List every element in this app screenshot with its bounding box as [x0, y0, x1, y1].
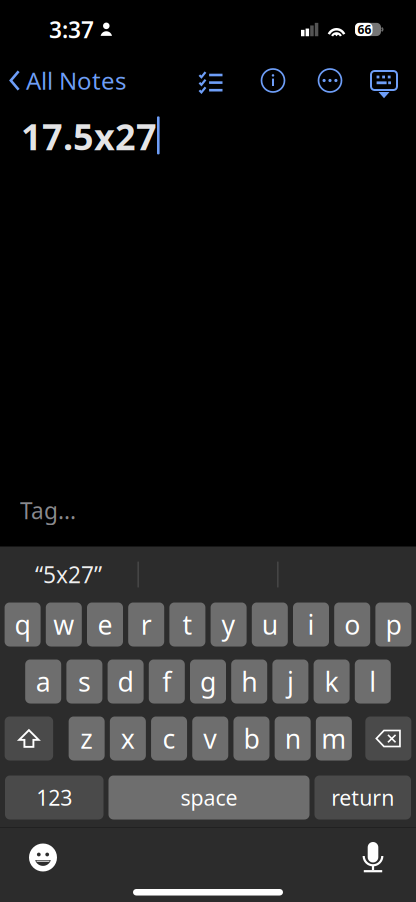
button[interactable]: s: [66, 659, 102, 703]
staticText: Tag...: [20, 495, 76, 525]
staticText: j: [287, 664, 294, 699]
button[interactable]: k: [314, 659, 350, 703]
button[interactable]: f: [149, 659, 185, 703]
button[interactable]: h: [231, 659, 267, 703]
staticText: r: [141, 607, 152, 642]
button[interactable]: g: [190, 659, 226, 703]
staticText: b: [243, 721, 259, 756]
staticText: q: [15, 607, 31, 642]
staticText: i: [307, 607, 314, 642]
button[interactable]: Shift: [5, 716, 53, 760]
staticText: “5x27”: [35, 559, 102, 589]
button[interactable]: o: [334, 602, 370, 646]
button[interactable]: q: [5, 602, 41, 646]
button[interactable]: p: [375, 602, 411, 646]
staticText: u: [262, 607, 278, 642]
staticText: space: [180, 783, 237, 812]
staticText: c: [163, 721, 176, 756]
button[interactable]: Info: [251, 58, 295, 102]
staticText: y: [222, 607, 236, 642]
staticText: w: [53, 607, 74, 642]
button[interactable]: i: [293, 602, 329, 646]
button[interactable]: More: [308, 58, 352, 102]
button[interactable]: j: [272, 659, 308, 703]
staticText: h: [241, 664, 257, 699]
staticText: 3:37: [49, 14, 94, 44]
staticText: All Notes: [26, 65, 126, 96]
button[interactable]: c: [151, 716, 187, 760]
button[interactable]: w: [46, 602, 82, 646]
staticText: 66: [357, 21, 371, 37]
button[interactable]: z: [69, 716, 105, 760]
staticText: l: [369, 664, 376, 699]
staticText: o: [344, 607, 360, 642]
button[interactable]: m: [316, 716, 352, 760]
button[interactable]: Dictate: [343, 835, 403, 879]
staticText: f: [162, 664, 171, 699]
button[interactable]: 123: [5, 775, 103, 819]
button[interactable]: v: [192, 716, 228, 760]
button[interactable]: x: [110, 716, 146, 760]
staticText: a: [36, 664, 51, 699]
button[interactable]: return: [314, 775, 411, 819]
staticText: x: [121, 721, 135, 756]
button[interactable]: d: [108, 659, 144, 703]
button[interactable]: t: [169, 602, 205, 646]
button[interactable]: b: [233, 716, 269, 760]
button[interactable]: n: [275, 716, 311, 760]
button[interactable]: u: [252, 602, 288, 646]
button[interactable]: Emoji: [13, 835, 73, 879]
staticText: s: [78, 664, 91, 699]
button[interactable]: a: [25, 659, 61, 703]
staticText: g: [200, 664, 216, 699]
staticText: d: [118, 664, 134, 699]
staticText: z: [80, 721, 93, 756]
button[interactable]: “5x27”: [0, 552, 137, 596]
button[interactable]: Checklist: [189, 58, 233, 102]
staticText: v: [203, 721, 217, 756]
button[interactable]: l: [355, 659, 391, 703]
button[interactable]: space: [108, 775, 309, 819]
staticText: t: [182, 607, 192, 642]
staticText: e: [97, 607, 112, 642]
staticText: m: [321, 721, 346, 756]
button[interactable]: y: [211, 602, 247, 646]
staticText: return: [331, 783, 394, 812]
staticText: n: [285, 721, 301, 756]
staticText: p: [385, 607, 401, 642]
button[interactable]: All Notes: [0, 58, 134, 102]
staticText: 17.5x27: [21, 112, 157, 160]
button[interactable]: Delete: [365, 716, 411, 760]
staticText: 123: [36, 783, 72, 812]
staticText: k: [325, 664, 339, 699]
button[interactable]: e: [87, 602, 123, 646]
button[interactable]: Hide Keyboard: [362, 58, 406, 102]
button[interactable]: r: [128, 602, 164, 646]
